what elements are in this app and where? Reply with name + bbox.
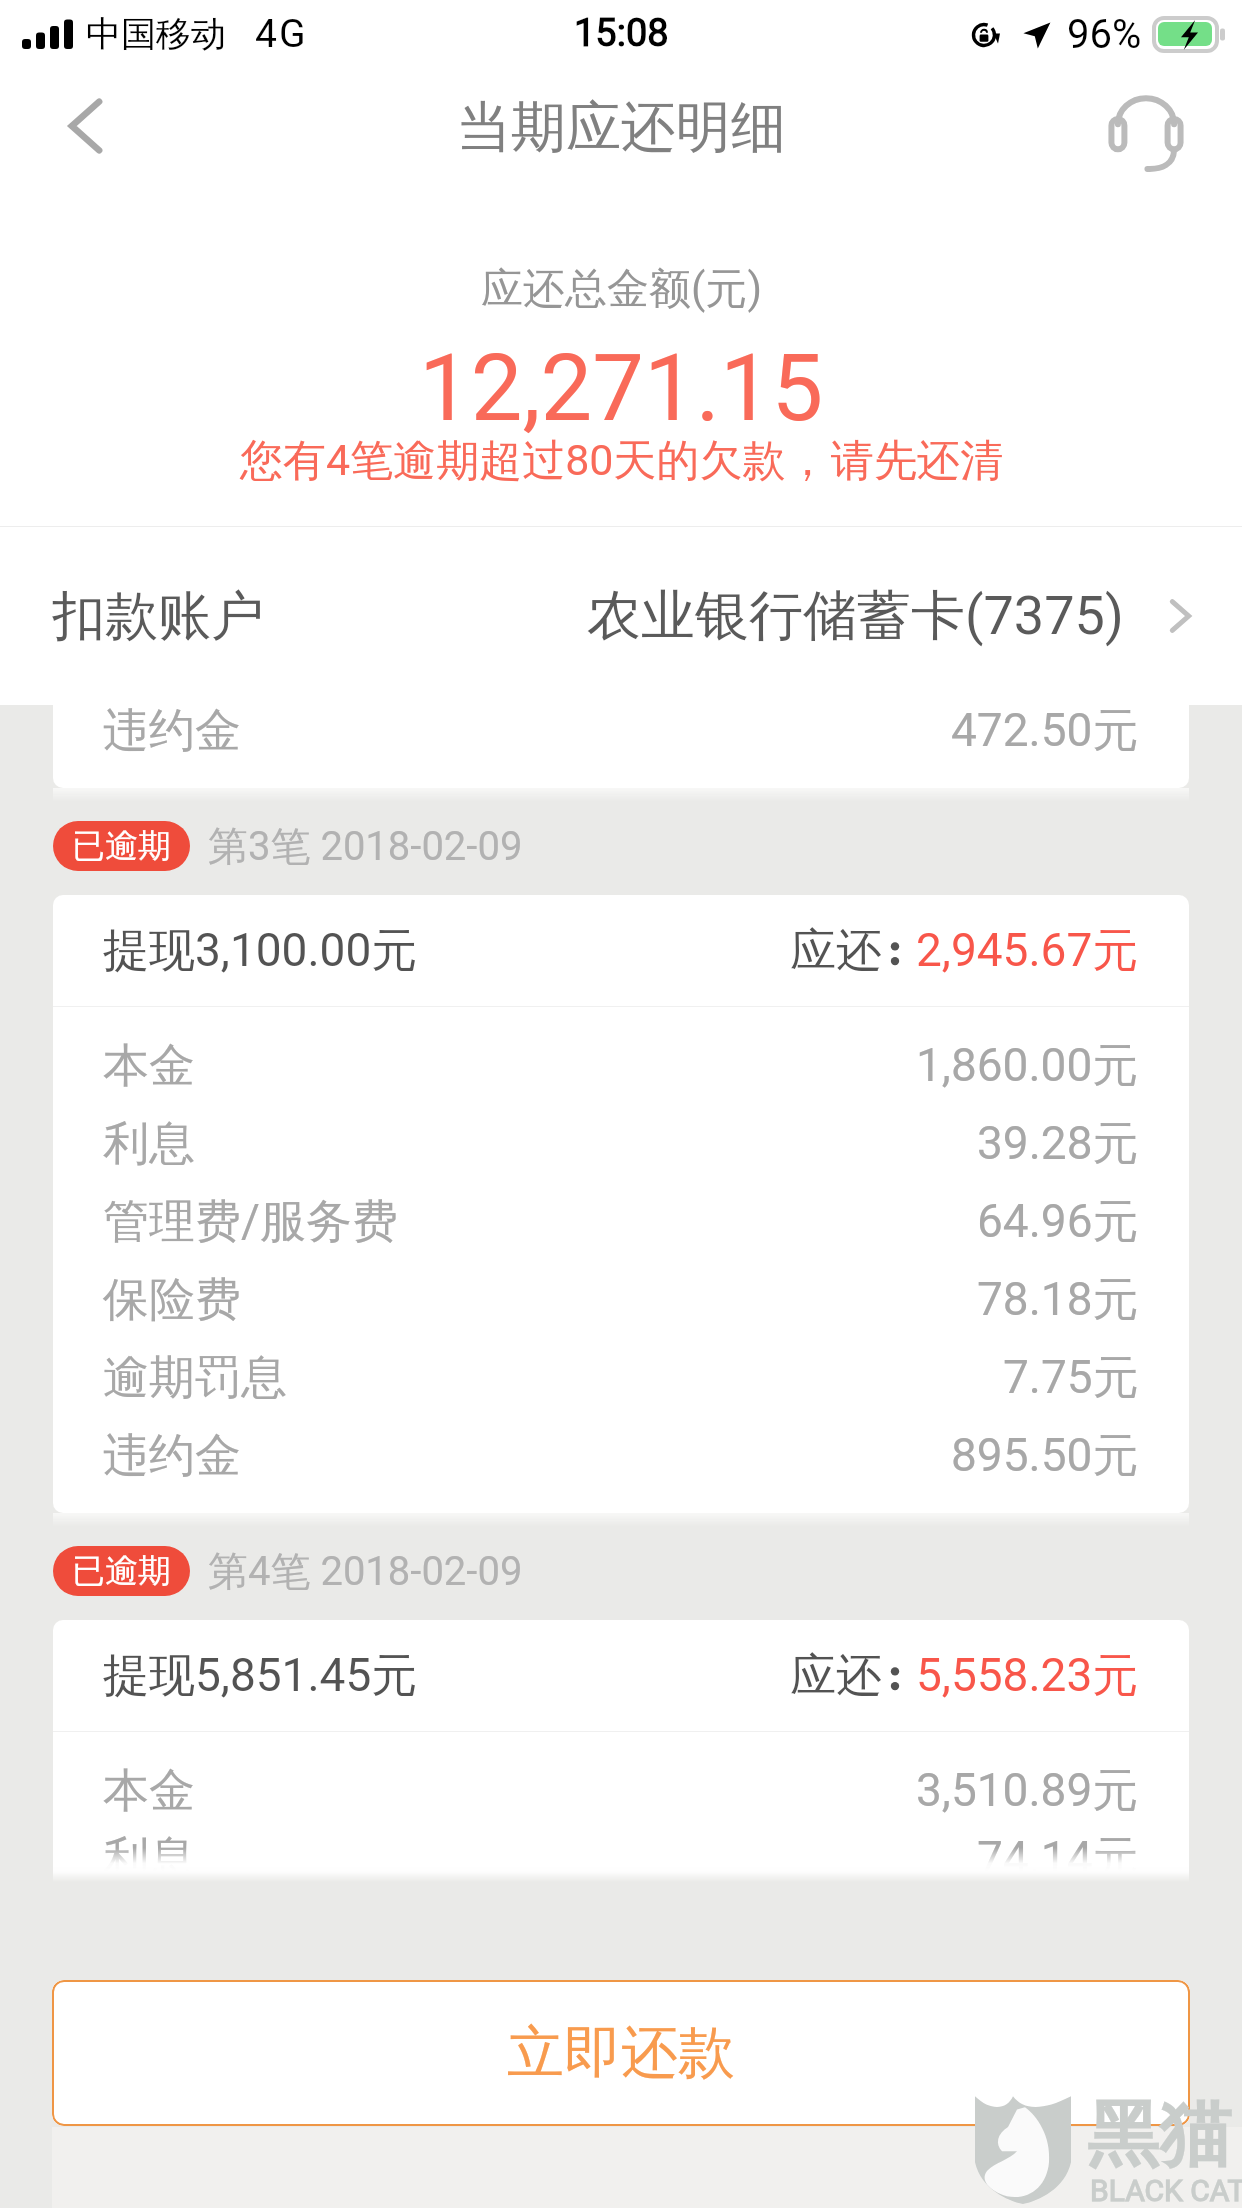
staticText: 7.75元: [1003, 1349, 1139, 1407]
staticText: ，: [786, 434, 829, 488]
staticText: 96%: [1067, 11, 1142, 58]
staticText: 64.96元: [977, 1193, 1139, 1251]
staticText: 应还: [790, 922, 882, 980]
staticText: 利息: [103, 1115, 195, 1173]
staticText: 逾期罚息: [103, 1349, 287, 1407]
button[interactable]: 提现5,851.45元: [53, 1620, 1189, 1872]
staticText: 74.14元: [977, 1830, 1139, 1872]
staticText: 黑猫: [1087, 2090, 1231, 2181]
staticText: 违约金: [103, 702, 241, 760]
button[interactable]: 扣款账户: [0, 527, 1242, 705]
staticText: 当期应还明细: [456, 93, 786, 162]
staticText: 农业银行储蓄卡(7375): [587, 582, 1124, 650]
staticText: 第4笔 2018-02-09: [208, 1546, 523, 1596]
staticText: 已逾期: [72, 1550, 171, 1592]
staticText: 1,860.00元: [916, 1037, 1139, 1095]
button[interactable]: Customer service: [1101, 84, 1191, 174]
staticText: 本金: [103, 1762, 195, 1820]
staticText: 4G: [255, 11, 308, 57]
staticText: 12,271.15: [419, 335, 824, 443]
staticText: 中国移动: [86, 12, 226, 56]
staticText: 您有4笔逾期超过80天的欠款: [240, 434, 786, 488]
staticText: 违约金: [103, 1427, 241, 1485]
staticText: 应还: [790, 1647, 882, 1705]
staticText: 5,558.23元: [916, 1647, 1139, 1705]
button[interactable]: Back: [46, 88, 128, 170]
staticText: 本金: [103, 1037, 195, 1095]
staticText: 472.50元: [951, 702, 1139, 760]
staticText: 78.18元: [977, 1271, 1139, 1329]
button[interactable]: 立即还款: [52, 1980, 1190, 2126]
staticText: 提现5,851.45元: [103, 1647, 418, 1705]
staticText: 利息: [103, 1830, 195, 1872]
staticText: 应还总金额(元): [481, 263, 762, 316]
staticText: 请先还清: [831, 434, 1003, 488]
staticText: 已逾期: [72, 825, 171, 867]
staticText: 管理费/服务费: [103, 1193, 398, 1251]
staticText: 第3笔 2018-02-09: [208, 821, 523, 871]
staticText: 39.28元: [977, 1115, 1139, 1173]
staticText: 895.50元: [951, 1427, 1139, 1485]
staticText: 2,945.67元: [916, 922, 1139, 980]
staticText: 立即还款: [507, 2017, 735, 2089]
staticText: 提现3,100.00元: [103, 922, 418, 980]
staticText: 15:08: [574, 11, 669, 56]
staticText: BLACK CAT: [1090, 2173, 1242, 2208]
staticText: 保险费: [103, 1271, 241, 1329]
staticText: 3,510.89元: [916, 1762, 1139, 1820]
button[interactable]: 提现3,100.00元: [53, 895, 1189, 1513]
staticText: 扣款账户: [52, 583, 264, 650]
